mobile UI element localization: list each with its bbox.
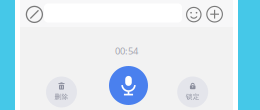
button[interactable]: Emoji [183, 1, 205, 28]
staticText: 锁定 [186, 93, 200, 101]
button[interactable]: Record [109, 66, 148, 105]
button[interactable]: More [204, 1, 226, 28]
staticText: 00:54 [115, 45, 138, 57]
button[interactable]: Voice input [22, 1, 46, 28]
button[interactable]: 删除 [46, 76, 77, 107]
staticText: 删除 [54, 93, 68, 101]
button[interactable]: 锁定 [177, 76, 208, 107]
